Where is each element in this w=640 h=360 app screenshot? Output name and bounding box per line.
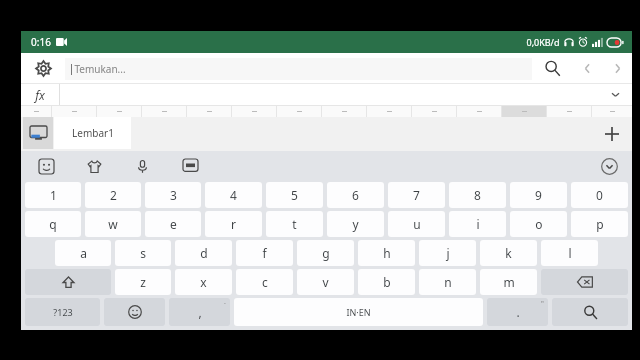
staticText: l (568, 245, 572, 261)
button[interactable] (52, 106, 96, 117)
button[interactable]: 5 (266, 182, 323, 208)
button[interactable]: w (85, 211, 141, 237)
button[interactable]: 0 (571, 182, 628, 208)
staticText: o (535, 216, 543, 232)
button[interactable] (547, 106, 591, 117)
button[interactable]: Lembar1 (54, 117, 131, 149)
staticText: 0 (596, 187, 603, 203)
staticText: 5 (291, 187, 298, 203)
button[interactable]: Stickers (83, 155, 105, 177)
staticText: u (413, 216, 421, 232)
staticText: k (505, 245, 512, 261)
button[interactable]: Emoji (35, 155, 57, 177)
button[interactable] (367, 106, 411, 117)
button[interactable]: Hide keyboard (596, 153, 622, 179)
button[interactable]: 1 (25, 182, 81, 208)
button[interactable] (142, 106, 186, 117)
button[interactable]: x (175, 269, 232, 295)
button[interactable]: g (297, 240, 354, 266)
button[interactable]: Settings (21, 53, 65, 84)
button[interactable]: z (115, 269, 171, 295)
button[interactable]: 4 (205, 182, 262, 208)
button[interactable]: , (169, 298, 230, 326)
button[interactable] (187, 106, 231, 117)
button[interactable] (502, 106, 546, 117)
staticText: fx (35, 87, 45, 103)
button[interactable]: q (25, 211, 81, 237)
button[interactable] (322, 106, 366, 117)
button[interactable]: Add sheet (600, 122, 624, 146)
button[interactable]: Search (532, 53, 572, 84)
button[interactable]: v (297, 269, 354, 295)
button[interactable]: Shift (25, 269, 111, 295)
button[interactable] (457, 106, 501, 117)
button[interactable]: b (358, 269, 415, 295)
button[interactable]: Expand formula bar (598, 84, 632, 105)
button[interactable]: y (327, 211, 384, 237)
button[interactable]: f (236, 240, 293, 266)
button[interactable]: Temukan... (65, 58, 532, 80)
staticText: w (108, 216, 118, 232)
button[interactable]: o (510, 211, 567, 237)
button[interactable]: a (55, 240, 111, 266)
staticText: · (224, 299, 226, 309)
staticText: 4 (230, 187, 237, 203)
button[interactable]: All sheets (23, 117, 53, 149)
button[interactable]: 9 (510, 182, 567, 208)
button[interactable]: 3 (145, 182, 201, 208)
button[interactable]: Next (602, 53, 632, 84)
button[interactable]: r (205, 211, 262, 237)
staticText: q (49, 216, 57, 232)
button[interactable]: n (419, 269, 476, 295)
button[interactable]: Search (552, 298, 628, 326)
staticText: 2 (110, 187, 117, 203)
button[interactable]: . (487, 298, 548, 326)
staticText: 6 (352, 187, 359, 203)
button[interactable]: m (480, 269, 537, 295)
button[interactable] (97, 106, 141, 117)
staticText: a (80, 245, 87, 261)
staticText: h (383, 245, 391, 261)
staticText: g (322, 245, 330, 261)
button[interactable]: 6 (327, 182, 384, 208)
button[interactable] (232, 106, 276, 117)
staticText: c (262, 274, 268, 290)
button[interactable]: Emoji (104, 298, 165, 326)
button[interactable] (277, 106, 321, 117)
button[interactable] (21, 106, 51, 117)
button[interactable]: c (236, 269, 293, 295)
button[interactable]: t (266, 211, 323, 237)
button[interactable]: 7 (388, 182, 445, 208)
staticText: n (444, 274, 452, 290)
staticText: 3 (170, 187, 177, 203)
button[interactable]: k (480, 240, 537, 266)
button[interactable]: fx (21, 84, 59, 105)
button[interactable]: d (175, 240, 232, 266)
button[interactable]: j (419, 240, 476, 266)
button[interactable]: Voice input (131, 155, 153, 177)
button[interactable]: l (541, 240, 598, 266)
staticText: t (292, 216, 297, 232)
button[interactable]: 2 (85, 182, 141, 208)
staticText: b (383, 274, 391, 290)
button[interactable] (412, 106, 456, 117)
button[interactable]: u (388, 211, 445, 237)
button[interactable]: 8 (449, 182, 506, 208)
button[interactable]: i (449, 211, 506, 237)
staticText: v (322, 274, 329, 290)
button[interactable]: ?123 (25, 298, 100, 326)
button[interactable]: e (145, 211, 201, 237)
staticText: e (170, 216, 177, 232)
button[interactable]: IN·EN (234, 298, 483, 326)
button[interactable]: GIF (179, 155, 201, 177)
staticText: y (352, 216, 359, 232)
button[interactable]: h (358, 240, 415, 266)
staticText: d (200, 245, 208, 261)
staticText: , (198, 304, 202, 320)
button[interactable]: Previous (572, 53, 602, 84)
button[interactable]: p (571, 211, 628, 237)
button[interactable]: s (115, 240, 171, 266)
button[interactable]: Backspace (541, 269, 628, 295)
button[interactable] (592, 106, 632, 117)
